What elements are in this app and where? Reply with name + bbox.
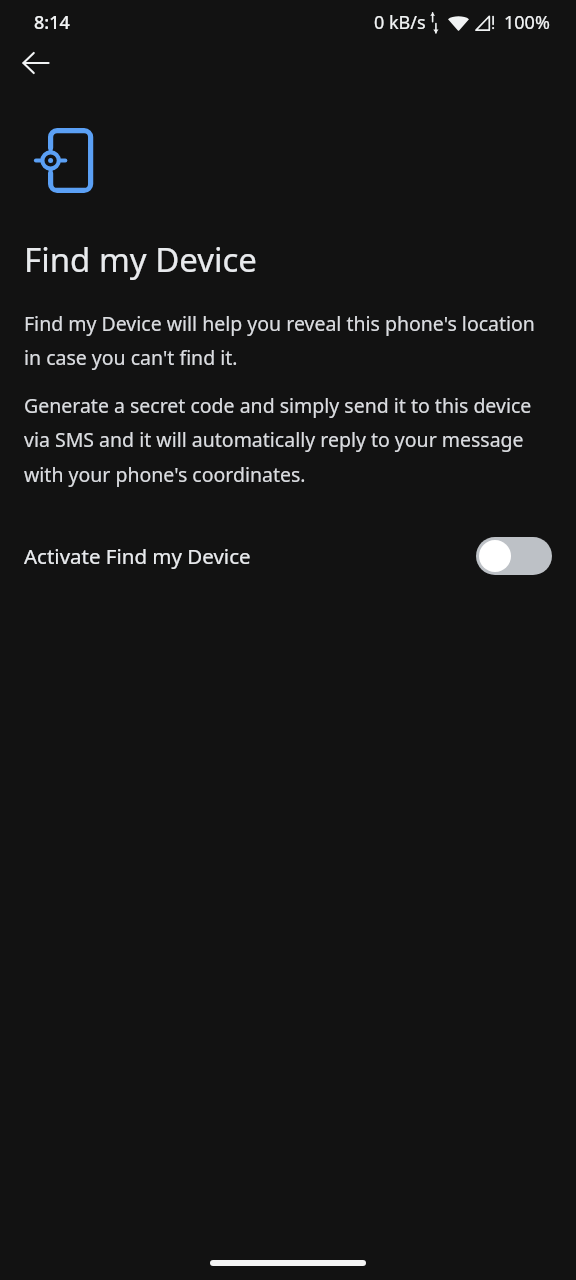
- staticText: 0 kB/s: [374, 10, 426, 35]
- staticText: 8:14: [34, 10, 70, 35]
- staticText: Generate a secret code and simply send i…: [24, 392, 552, 488]
- staticText: Find my Device: [24, 237, 257, 282]
- button[interactable]: Back: [6, 40, 66, 86]
- staticText: 100%: [504, 10, 550, 35]
- button[interactable]: Activate Find my Device: [24, 528, 552, 584]
- staticText: Activate Find my Device: [24, 542, 251, 570]
- staticText: Find my Device will help you reveal this…: [24, 310, 552, 371]
